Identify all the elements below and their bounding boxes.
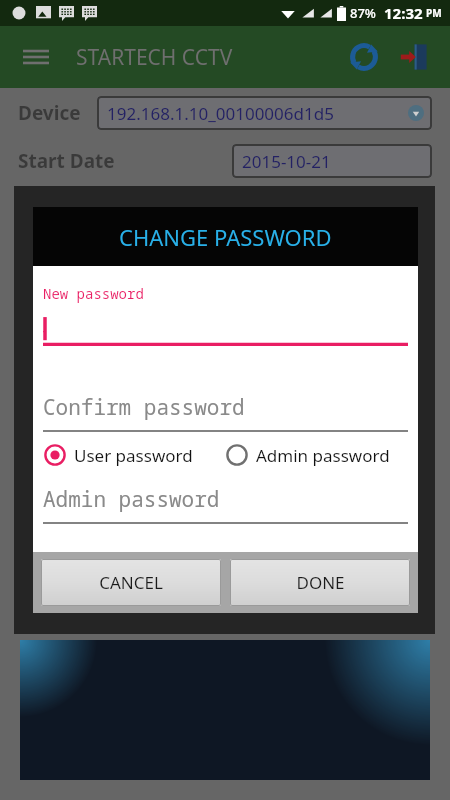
staticText: Admin password: [256, 444, 390, 467]
staticText: New password: [43, 284, 144, 303]
staticText: Start Date: [18, 148, 115, 174]
staticText: DONE: [296, 571, 345, 594]
staticText: STARTECH CCTV: [76, 43, 233, 72]
staticText: PM: [426, 6, 442, 20]
button[interactable]: Admin password: [225, 443, 408, 467]
button[interactable]: Confirm password: [43, 389, 408, 431]
button[interactable]: Admin password: [43, 481, 408, 523]
button[interactable]: Logout: [392, 35, 436, 79]
staticText: User password: [74, 444, 193, 467]
button[interactable]: Refresh: [342, 35, 386, 79]
button[interactable]: 2015-10-21: [232, 144, 432, 178]
button[interactable]: DONE: [230, 559, 410, 606]
staticText: Confirm password: [43, 393, 245, 422]
button[interactable]: [43, 313, 408, 347]
staticText: 12:32: [384, 3, 423, 23]
staticText: Admin password: [43, 485, 220, 514]
button[interactable]: Menu: [18, 39, 54, 75]
staticText: Device: [18, 100, 81, 126]
button[interactable]: 192.168.1.10_00100006d1d5: [97, 96, 432, 130]
staticText: 87%: [350, 4, 376, 22]
staticText: CANCEL: [99, 571, 163, 594]
staticText: CHANGE PASSWORD: [119, 222, 332, 252]
button[interactable]: User password: [43, 443, 225, 467]
button[interactable]: CANCEL: [41, 559, 221, 606]
staticText: 192.168.1.10_00100006d1d5: [107, 102, 334, 125]
staticText: 2015-10-21: [242, 150, 331, 173]
